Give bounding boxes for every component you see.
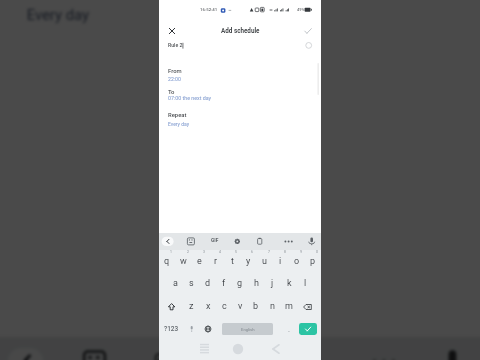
button[interactable]: Enter: [299, 323, 317, 335]
staticText: English: [241, 327, 255, 332]
staticText: b: [253, 301, 259, 312]
button[interactable]: k: [281, 273, 297, 293]
button[interactable]: Change language: [200, 319, 216, 339]
button[interactable]: j: [264, 273, 280, 293]
button[interactable]: More options: [281, 233, 297, 250]
button[interactable]: Voice input: [304, 233, 320, 250]
staticText: 9: [300, 250, 302, 254]
button[interactable]: [159, 109, 321, 128]
staticText: ?123: [164, 325, 179, 333]
staticText: x: [206, 301, 211, 312]
button[interactable]: s: [183, 273, 199, 293]
staticText: GIF: [211, 238, 219, 244]
staticText: 7: [268, 250, 270, 254]
button[interactable]: c: [216, 296, 232, 316]
button[interactable]: m: [281, 296, 297, 316]
staticText: 16:52:41: [200, 7, 218, 12]
button[interactable]: x: [200, 296, 216, 316]
button[interactable]: Stickers: [183, 233, 199, 250]
staticText: c: [222, 301, 227, 312]
button[interactable]: Back: [3, 337, 50, 360]
staticText: m: [285, 301, 293, 312]
staticText: 07:00 the next day: [168, 95, 212, 101]
button[interactable]: w: [175, 251, 191, 271]
button[interactable]: e: [191, 251, 207, 271]
staticText: y: [246, 256, 251, 267]
button[interactable]: Back: [267, 339, 285, 357]
button[interactable]: t: [224, 251, 240, 271]
button[interactable]: GIF: [206, 233, 222, 250]
button[interactable]: q: [159, 251, 175, 271]
staticText: Every day: [168, 121, 190, 127]
staticText: 5: [235, 250, 237, 254]
button[interactable]: Settings: [229, 233, 245, 250]
button[interactable]: p: [305, 251, 321, 271]
button[interactable]: ?123: [159, 319, 183, 339]
staticText: u: [262, 256, 267, 267]
button[interactable]: Shift: [159, 297, 183, 317]
staticText: 8: [284, 250, 286, 254]
staticText: n: [270, 301, 275, 312]
button[interactable]: Stickers: [71, 337, 118, 360]
staticText: g: [237, 278, 243, 289]
staticText: 4: [219, 250, 221, 254]
button[interactable]: Clipboard: [276, 337, 323, 360]
staticText: To: [168, 89, 175, 96]
button[interactable]: GIF: [139, 337, 187, 360]
staticText: From: [168, 68, 182, 75]
staticText: Every day: [27, 5, 92, 23]
button[interactable]: Backspace: [297, 297, 321, 317]
staticText: Repeat: [168, 112, 187, 119]
button[interactable]: z: [183, 296, 199, 316]
staticText: z: [189, 301, 194, 312]
staticText: t: [231, 256, 234, 267]
staticText: Rule 2: [168, 42, 183, 48]
staticText: 22:00: [168, 76, 181, 82]
button[interactable]: v: [232, 296, 248, 316]
button[interactable]: Add schedule: [221, 27, 260, 34]
staticText: f: [222, 278, 226, 289]
staticText: l: [304, 278, 307, 289]
button[interactable]: [0, 0, 480, 26]
staticText: e: [197, 256, 202, 267]
staticText: h: [254, 278, 259, 289]
button[interactable]: b: [248, 296, 264, 316]
staticText: 6: [251, 250, 253, 254]
button[interactable]: n: [264, 296, 280, 316]
staticText: .: [288, 325, 290, 334]
button[interactable]: Confirm: [299, 22, 317, 40]
button[interactable]: g: [232, 273, 248, 293]
button[interactable]: Home: [229, 339, 247, 357]
button[interactable]: r: [208, 251, 224, 271]
staticText: v: [238, 301, 243, 312]
staticText: 49%: [297, 7, 305, 12]
button[interactable]: [159, 65, 321, 81]
button[interactable]: u: [256, 251, 272, 271]
button[interactable]: Back: [160, 233, 176, 250]
button[interactable]: Voice input: [430, 337, 477, 360]
staticText: d: [205, 278, 211, 289]
button[interactable]: i: [272, 251, 288, 271]
button[interactable]: d: [200, 273, 216, 293]
staticText: 0: [316, 250, 318, 254]
button[interactable]: Voice input: [185, 319, 199, 339]
button[interactable]: a: [167, 273, 183, 293]
button[interactable]: [159, 86, 321, 103]
staticText: GIF: [154, 352, 178, 360]
staticText: j: [271, 278, 274, 289]
button[interactable]: f: [216, 273, 232, 293]
button[interactable]: o: [289, 251, 305, 271]
staticText: q: [164, 256, 170, 267]
button[interactable]: Close: [163, 22, 181, 40]
staticText: k: [287, 278, 292, 289]
button[interactable]: Clear text: [302, 39, 315, 52]
button[interactable]: Settings: [207, 337, 255, 360]
button[interactable]: Recent apps: [191, 339, 209, 357]
button[interactable]: Clipboard: [252, 233, 268, 250]
button[interactable]: y: [240, 251, 256, 271]
button[interactable]: l: [297, 273, 313, 293]
button[interactable]: h: [248, 273, 264, 293]
button[interactable]: Space: [222, 323, 273, 335]
